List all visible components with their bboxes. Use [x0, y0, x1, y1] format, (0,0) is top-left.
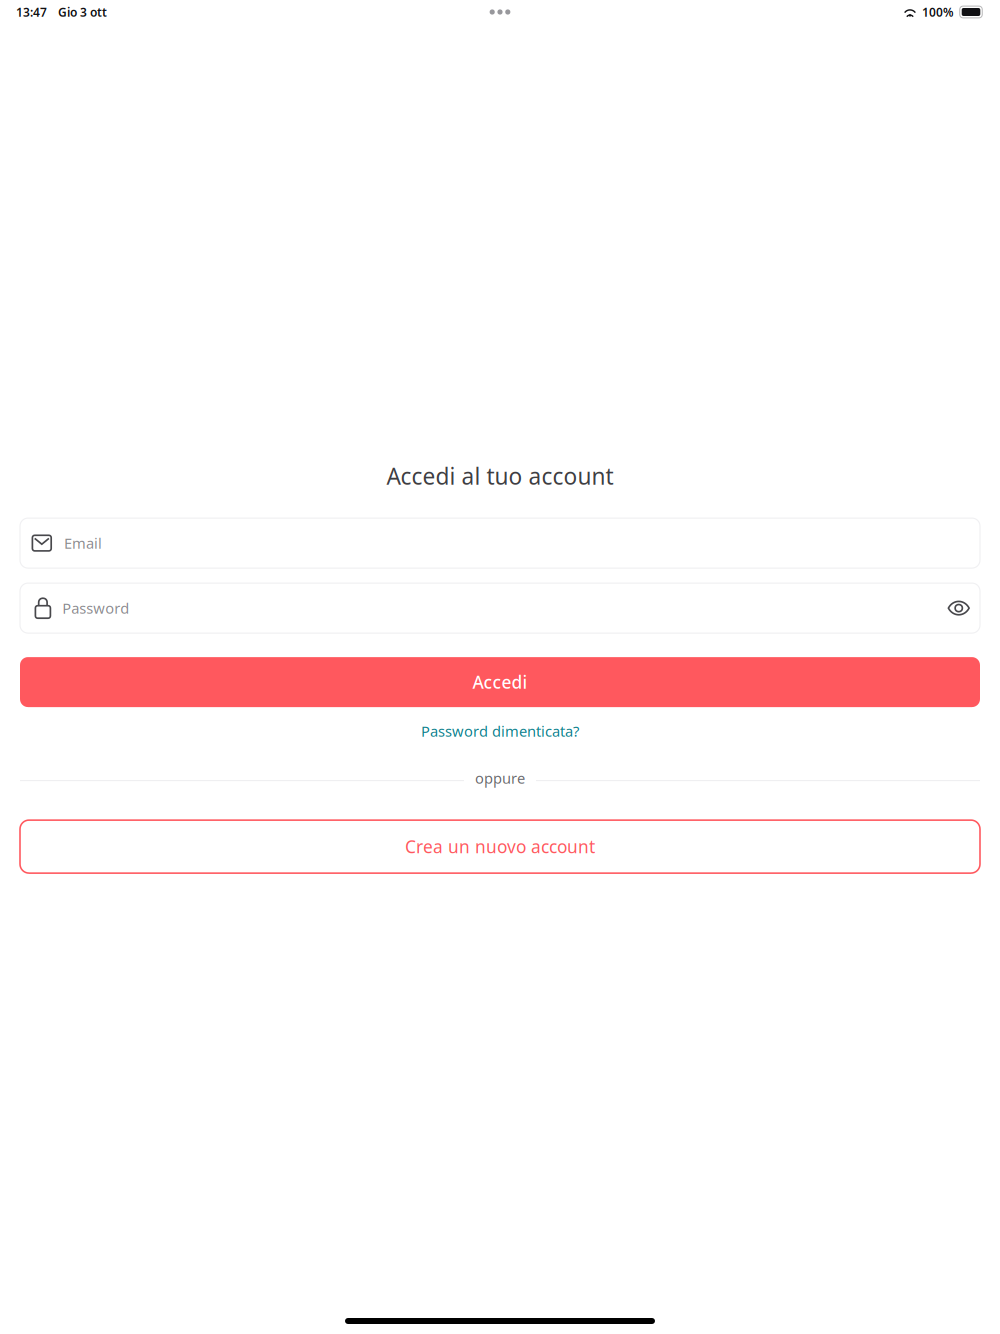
button[interactable]: Password	[20, 583, 945, 633]
staticText: Accedi al tuo account	[386, 461, 613, 491]
staticText: Crea un nuovo account	[405, 835, 595, 858]
staticText: Accedi	[472, 671, 527, 694]
staticText: Password	[62, 598, 129, 618]
button[interactable]: Mostra password	[945, 583, 972, 633]
button[interactable]: Crea un nuovo account	[20, 820, 980, 873]
staticText: Gio 3 ott	[58, 4, 107, 20]
button[interactable]: Password dimenticata?	[20, 716, 980, 746]
button[interactable]: Email	[20, 518, 980, 568]
staticText: Email	[64, 533, 102, 553]
staticText: Password dimenticata?	[421, 721, 579, 741]
staticText: oppure	[475, 768, 525, 788]
staticText: 13:47	[16, 4, 47, 20]
button[interactable]: Accedi	[20, 657, 980, 707]
staticText: 100%	[922, 4, 954, 20]
